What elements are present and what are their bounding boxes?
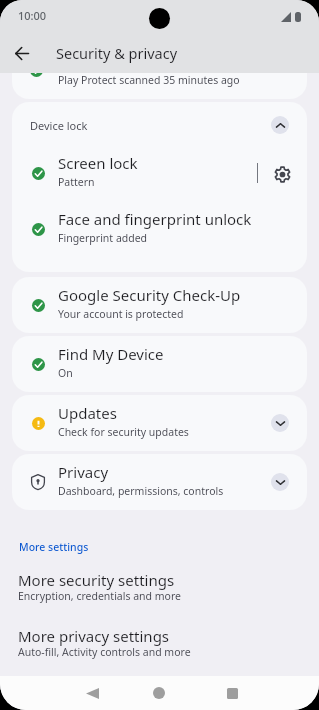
button[interactable]: Updates: [12, 395, 307, 451]
button[interactable]: More settings: [0, 538, 319, 560]
button[interactable]: Screen lock: [12, 148, 307, 204]
staticText: Your account is protected: [58, 307, 184, 321]
button[interactable]: Device lock: [12, 102, 307, 148]
staticText: Privacy: [58, 462, 109, 482]
staticText: Check for security updates: [58, 425, 189, 439]
button[interactable]: Google Security Check-Up: [12, 277, 307, 333]
staticText: Google Security Check-Up: [58, 285, 241, 305]
button[interactable]: Face and fingerprint unlock: [12, 204, 307, 260]
staticText: Encryption, credentials and more: [18, 589, 182, 603]
button[interactable]: Recents: [214, 676, 250, 710]
staticText: Pattern: [58, 175, 95, 189]
button[interactable]: Expand: [271, 414, 289, 432]
button[interactable]: Privacy: [12, 454, 307, 510]
staticText: Play Protect scanned 35 minutes ago: [58, 73, 240, 87]
button[interactable]: Find My Device: [12, 336, 307, 392]
button[interactable]: More privacy settings: [0, 626, 319, 667]
button[interactable]: Home: [141, 676, 177, 710]
staticText: Screen lock: [58, 153, 138, 173]
staticText: Find My Device: [58, 344, 164, 364]
staticText: Security & privacy: [56, 43, 178, 63]
staticText: More security settings: [18, 570, 175, 590]
staticText: On: [58, 366, 73, 380]
button[interactable]: Back: [74, 676, 110, 710]
staticText: More privacy settings: [18, 626, 170, 646]
staticText: Updates: [58, 403, 117, 423]
button[interactable]: More security settings: [0, 570, 319, 611]
button[interactable]: Expand: [271, 473, 289, 491]
staticText: Dashboard, permissions, controls: [58, 484, 224, 498]
button[interactable]: Back: [8, 39, 36, 67]
staticText: More settings: [19, 540, 89, 554]
staticText: Fingerprint added: [58, 231, 148, 245]
staticText: Face and fingerprint unlock: [58, 209, 252, 229]
button[interactable]: Play Protect scanned 35 minutes ago: [12, 73, 307, 99]
staticText: Auto-fill, Activity controls and more: [18, 645, 191, 659]
button[interactable]: Screen lock settings: [258, 146, 307, 202]
staticText: 10:00: [18, 8, 47, 23]
staticText: Device lock: [30, 118, 88, 133]
